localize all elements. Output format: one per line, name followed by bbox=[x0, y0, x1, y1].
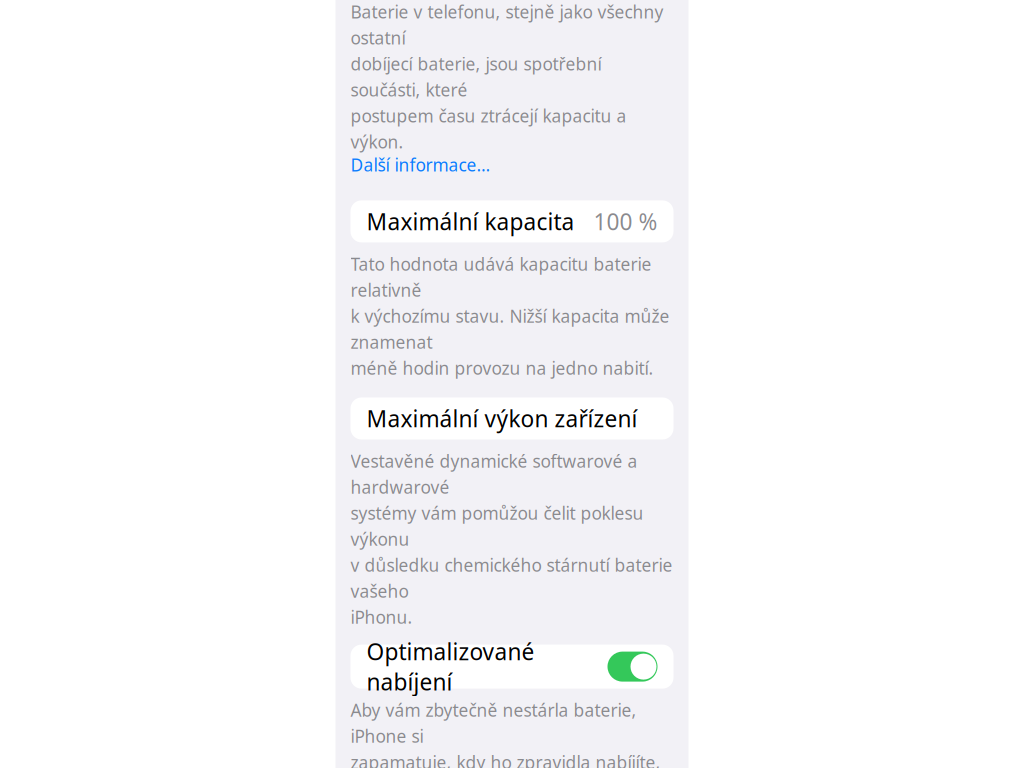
staticText: Optimalizované nabíjení bbox=[366, 636, 534, 697]
staticText: Další informace… bbox=[350, 153, 490, 176]
button[interactable]: Maximální výkon zařízení bbox=[350, 397, 673, 439]
staticText: 100 % bbox=[593, 206, 657, 236]
staticText: Maximální kapacita bbox=[366, 206, 574, 236]
staticText: Tato hodnota udává kapacitu baterie rela… bbox=[350, 252, 669, 379]
staticText: Maximální výkon zařízení bbox=[366, 403, 637, 433]
button[interactable]: Maximální kapacita bbox=[350, 200, 673, 242]
staticText: Baterie v telefonu, stejně jako všechny … bbox=[350, 0, 663, 153]
button[interactable]: Další informace… bbox=[350, 153, 673, 176]
button[interactable]: Optimalizované nabíjení bbox=[350, 645, 673, 689]
staticText: Vestavěné dynamické softwarové a hardwar… bbox=[350, 449, 672, 629]
staticText: Aby vám zbytečně nestárla baterie, iPhon… bbox=[350, 699, 669, 768]
